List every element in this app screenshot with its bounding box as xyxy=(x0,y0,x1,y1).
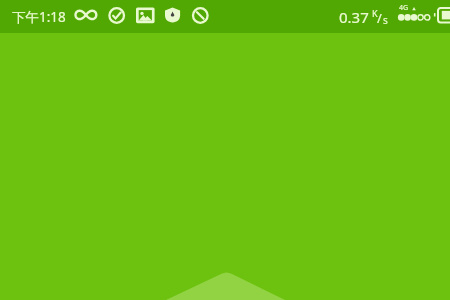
button[interactable]: Swipe up xyxy=(0,0,450,300)
staticText: / xyxy=(377,9,382,27)
staticText: 下午1:18 xyxy=(12,8,66,26)
button[interactable]: Security scan xyxy=(165,0,181,33)
button[interactable]: Screenshot saved xyxy=(136,0,155,33)
button[interactable]: 下午1:18 xyxy=(12,0,66,33)
staticText: K xyxy=(372,7,378,19)
staticText: 0.37 xyxy=(339,7,369,27)
button[interactable]: Battery xyxy=(434,0,450,33)
button[interactable]: Unlimited data xyxy=(74,0,94,33)
button[interactable]: Mobile signal, 4G xyxy=(397,0,433,33)
button[interactable]: Do not disturb xyxy=(192,0,209,33)
button[interactable]: 0.37 xyxy=(336,0,392,33)
button[interactable]: Protection active xyxy=(108,0,125,33)
staticText: 4G xyxy=(399,3,409,13)
staticText: s xyxy=(383,13,388,27)
